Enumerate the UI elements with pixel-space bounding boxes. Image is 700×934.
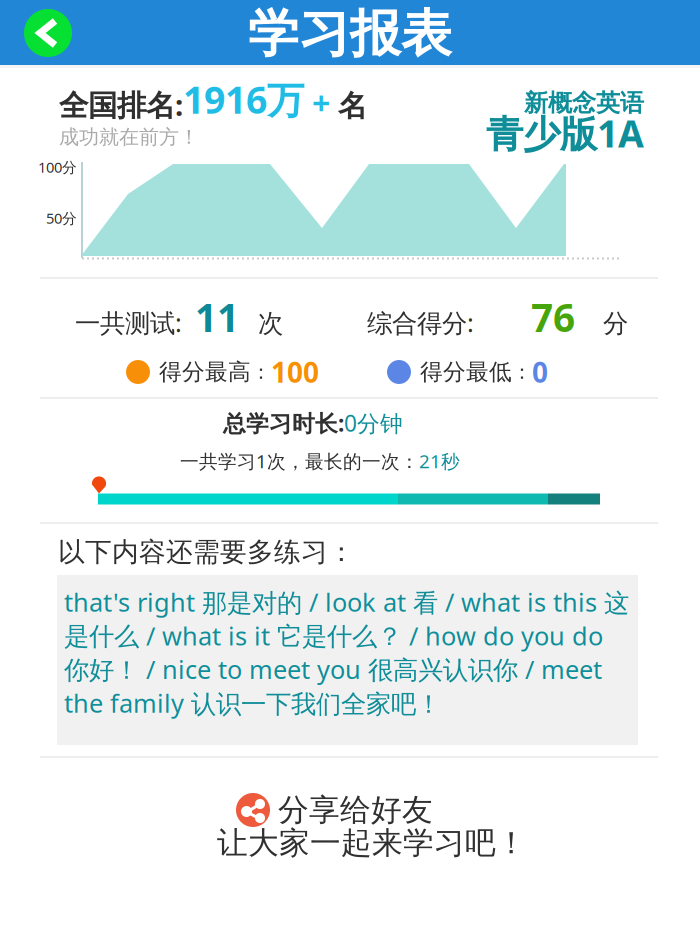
staticText: 一共测试: <box>75 306 182 339</box>
staticText: 全国排名: <box>59 85 183 124</box>
staticText: 76 <box>531 291 575 343</box>
staticText: 让大家一起来学习吧！ <box>217 824 527 862</box>
staticText: 0 <box>532 353 548 391</box>
staticText: 学习报表 <box>248 3 452 65</box>
staticText: 得分最低 <box>420 358 512 386</box>
staticText: 得分最高 <box>159 358 251 386</box>
staticText: 100 <box>271 353 319 391</box>
staticText: + <box>304 81 338 124</box>
staticText: ： <box>512 360 532 384</box>
staticText: 青少版1A <box>486 108 644 158</box>
staticText: 新概念英语 <box>524 88 644 118</box>
button[interactable]: 分享给好友 让大家一起来学习吧 <box>190 786 510 864</box>
staticText: 分享给好友 <box>278 791 433 829</box>
staticText: 成功就在前方！ <box>59 125 199 149</box>
staticText: ： <box>251 360 271 384</box>
staticText: 100分 <box>38 157 77 177</box>
staticText: 11 <box>195 291 239 343</box>
staticText: 总学习时长: <box>223 408 344 438</box>
staticText: that's right 那是对的 / look at 看 / what is … <box>64 585 629 720</box>
staticText: 0分钟 <box>344 408 403 438</box>
staticText: 21秒 <box>419 449 460 473</box>
staticText: 综合得分: <box>367 306 474 339</box>
staticText: 1916万 <box>183 74 304 124</box>
staticText: 以下内容还需要多练习： <box>58 536 355 568</box>
staticText: 次 <box>258 308 283 339</box>
staticText: 50分 <box>46 208 77 228</box>
staticText: 名 <box>338 88 367 124</box>
button[interactable]: Back <box>6 0 90 65</box>
staticText: 一共学习1次，最长的一次： <box>180 449 419 473</box>
staticText: 分 <box>603 308 628 339</box>
